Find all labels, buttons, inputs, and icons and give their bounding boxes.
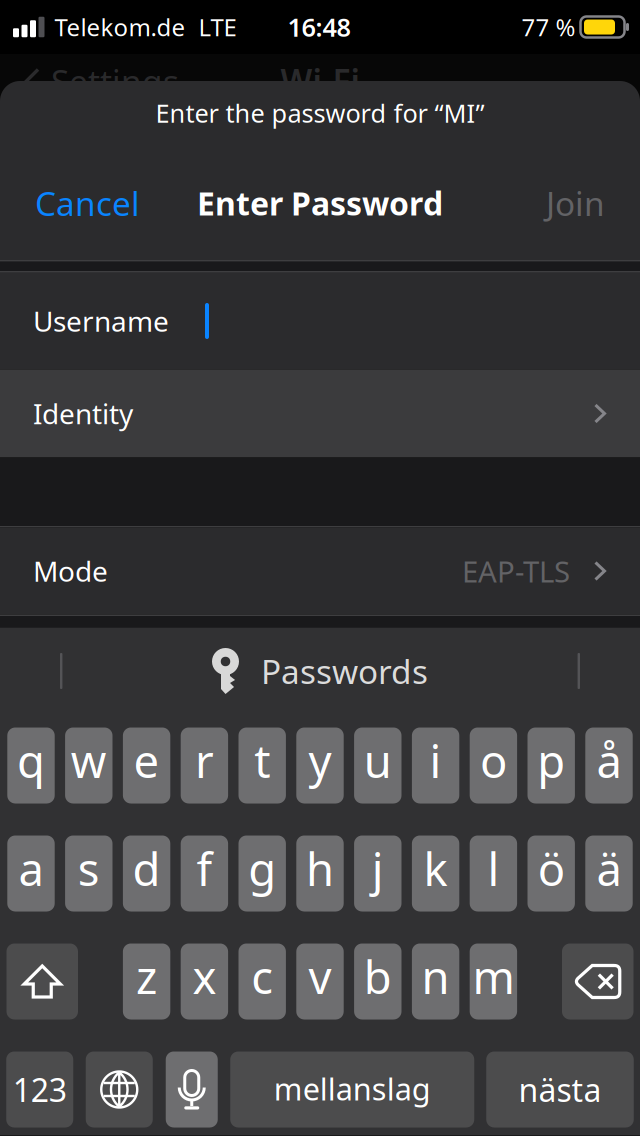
staticText: 77 % (521, 11, 575, 43)
staticText: k (424, 838, 448, 899)
button[interactable]: m (470, 943, 517, 1019)
staticText: b (364, 946, 392, 1007)
button[interactable]: k (412, 835, 459, 911)
staticText: c (251, 946, 273, 1007)
staticText: i (430, 730, 442, 791)
button[interactable]: x (181, 943, 228, 1019)
button[interactable]: Join (527, 172, 624, 234)
button[interactable]: å (585, 727, 633, 803)
staticText: t (254, 730, 270, 791)
button[interactable]: 123 (6, 1051, 73, 1127)
button[interactable]: Cancel (16, 172, 159, 234)
button[interactable]: d (123, 835, 170, 911)
button[interactable]: l (470, 835, 517, 911)
button[interactable]: f (181, 835, 228, 911)
staticText: o (480, 730, 507, 791)
staticText: z (136, 946, 157, 1007)
staticText: Enter Password (197, 182, 443, 224)
button[interactable]: v (296, 943, 344, 1019)
staticText: x (192, 946, 216, 1007)
button[interactable]: y (296, 727, 344, 803)
staticText: ö (538, 838, 565, 899)
staticText: n (422, 946, 450, 1007)
button[interactable]: Dictation (166, 1051, 218, 1127)
staticText: g (248, 838, 276, 899)
staticText: v (308, 946, 331, 1007)
button[interactable]: mellanslag (230, 1051, 474, 1127)
staticText: f (196, 838, 212, 899)
button[interactable]: Shift (6, 943, 78, 1019)
staticText: Wi-Fi (280, 59, 359, 103)
button[interactable]: u (354, 727, 401, 803)
staticText: nästa (518, 1068, 601, 1111)
button[interactable]: p (527, 727, 575, 803)
staticText: 123 (13, 1068, 67, 1111)
button[interactable]: q (7, 727, 55, 803)
staticText: h (306, 838, 334, 899)
staticText: w (71, 730, 107, 791)
button[interactable]: t (238, 727, 286, 803)
staticText: Identity (33, 395, 133, 432)
staticText: j (372, 838, 384, 899)
staticText: l (487, 838, 499, 899)
button[interactable]: j (354, 835, 401, 911)
staticText: Settings (51, 59, 179, 103)
button[interactable]: c (238, 943, 286, 1019)
staticText: s (78, 838, 100, 899)
staticText: 16:48 (287, 10, 350, 44)
button[interactable]: h (296, 835, 344, 911)
button[interactable]: ä (585, 835, 633, 911)
button[interactable]: Next keyboard (86, 1051, 153, 1127)
staticText: LTE (198, 11, 236, 43)
button[interactable]: i (412, 727, 459, 803)
staticText: ä (596, 838, 621, 899)
staticText: Enter the password for “MI” (155, 96, 484, 130)
staticText: Join (546, 181, 605, 225)
staticText: m (472, 946, 514, 1007)
button[interactable]: n (412, 943, 459, 1019)
button[interactable]: Delete (562, 943, 633, 1019)
button[interactable]: o (470, 727, 517, 803)
button[interactable]: w (65, 727, 112, 803)
button[interactable]: s (65, 835, 112, 911)
staticText: Username (33, 302, 169, 340)
button[interactable]: g (238, 835, 286, 911)
staticText: Cancel (35, 181, 140, 225)
staticText: å (596, 730, 621, 791)
staticText: u (364, 730, 392, 791)
button[interactable]: nästa (486, 1051, 634, 1127)
staticText: p (537, 730, 565, 791)
staticText: Mode (33, 552, 108, 590)
staticText: q (17, 730, 45, 791)
button[interactable]: r (181, 727, 228, 803)
staticText: d (133, 838, 161, 899)
button[interactable]: b (354, 943, 401, 1019)
button[interactable]: z (123, 943, 170, 1019)
button[interactable]: e (123, 727, 170, 803)
staticText: Telekom.de (54, 11, 185, 43)
button[interactable]: a (7, 835, 55, 911)
staticText: y (308, 730, 331, 791)
staticText: a (18, 838, 43, 899)
button[interactable]: Passwords (188, 639, 452, 703)
button[interactable]: Mode (0, 527, 640, 614)
staticText: Passwords (261, 649, 428, 693)
staticText: e (134, 730, 160, 791)
button[interactable]: Identity (0, 369, 640, 457)
staticText: r (195, 730, 214, 791)
button[interactable]: ö (527, 835, 575, 911)
staticText: EAP-TLS (462, 551, 570, 590)
staticText: mellanslag (274, 1068, 431, 1109)
